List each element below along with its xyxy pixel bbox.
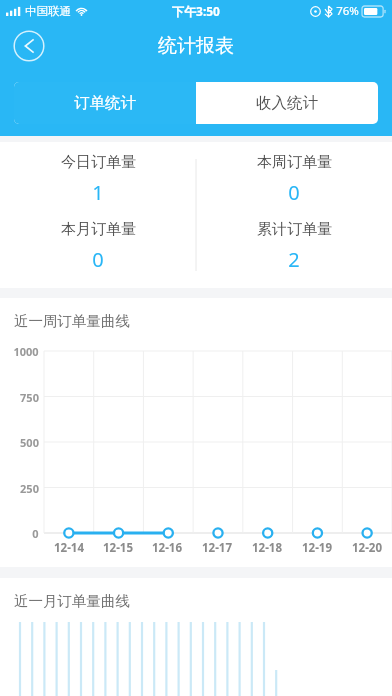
- staticText: 今日订单量: [61, 153, 136, 172]
- staticText: 0: [32, 526, 39, 540]
- staticText: 750: [20, 390, 39, 404]
- staticText: 2: [288, 246, 300, 273]
- staticText: 12-19: [302, 540, 332, 556]
- staticText: 12-18: [252, 540, 282, 556]
- staticText: 0: [92, 246, 104, 273]
- staticText: 250: [20, 481, 39, 495]
- staticText: 1: [92, 179, 104, 206]
- button[interactable]: 累计订单量: [196, 220, 392, 273]
- staticText: 下午3:50: [172, 3, 220, 19]
- staticText: 统计报表: [158, 34, 234, 58]
- staticText: 收入统计: [256, 93, 318, 113]
- button[interactable]: 本周订单量: [196, 153, 392, 206]
- staticText: 1000: [13, 344, 39, 358]
- staticText: 0: [288, 179, 300, 206]
- button[interactable]: 今日订单量: [0, 153, 196, 206]
- staticText: 订单统计: [74, 93, 136, 113]
- staticText: 12-14: [54, 540, 84, 556]
- staticText: 500: [20, 435, 39, 449]
- button[interactable]: 收入统计: [196, 82, 378, 124]
- staticText: 12-17: [202, 540, 232, 556]
- staticText: 累计订单量: [257, 220, 332, 239]
- staticText: 76%: [336, 3, 359, 19]
- staticText: 12-20: [352, 540, 382, 556]
- staticText: 本月订单量: [61, 220, 136, 239]
- staticText: 12-16: [152, 540, 182, 556]
- button[interactable]: 本月订单量: [0, 220, 196, 273]
- staticText: 近一月订单量曲线: [14, 592, 130, 610]
- staticText: 本周订单量: [257, 153, 332, 172]
- button[interactable]: 订单统计: [14, 82, 196, 124]
- staticText: 近一周订单量曲线: [14, 312, 130, 330]
- button[interactable]: Back: [13, 30, 45, 62]
- staticText: 12-15: [103, 540, 133, 556]
- staticText: 中国联通: [25, 4, 71, 18]
